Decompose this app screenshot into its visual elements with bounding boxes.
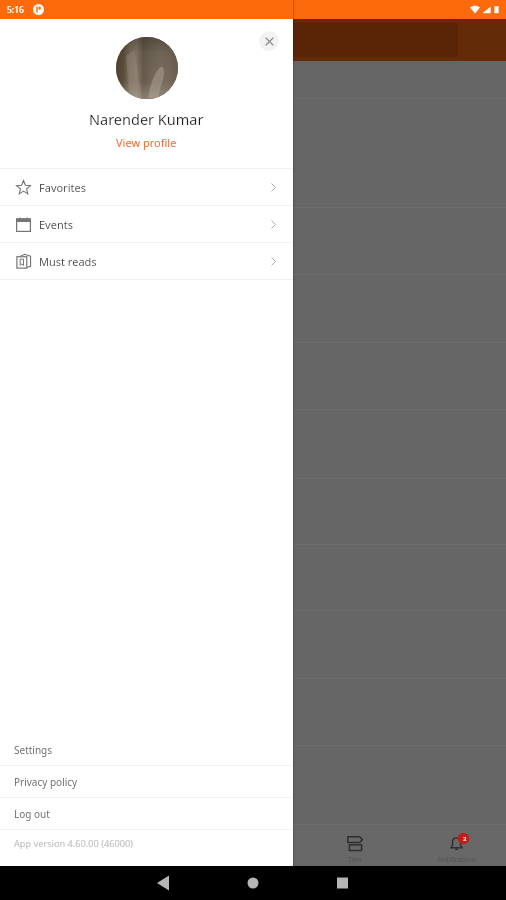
staticText: Narender Kumar	[89, 109, 204, 129]
button[interactable]: Search	[10, 22, 458, 57]
staticText: 5:16	[7, 4, 24, 16]
staticText: Settings	[14, 743, 53, 757]
button[interactable]: Favorites	[0, 169, 293, 205]
staticText: 2	[463, 835, 467, 843]
staticText: Tiles	[348, 855, 362, 864]
button[interactable]: Tiles	[310, 834, 400, 864]
staticText: Log out	[14, 807, 50, 821]
button[interactable]: Settings	[0, 734, 293, 765]
staticText: Events	[39, 217, 73, 232]
button[interactable]: 2	[412, 834, 502, 864]
staticText: Must reads	[39, 254, 97, 269]
button[interactable]: Events	[0, 206, 293, 242]
staticText: View profile	[116, 135, 177, 150]
button[interactable]: Log out	[0, 798, 293, 829]
button[interactable]: Close drawer	[259, 31, 279, 51]
button[interactable]: View profile	[110, 134, 183, 151]
staticText: Notifications	[438, 855, 477, 864]
staticText: App version 4.60.00 (46000)	[14, 837, 133, 850]
staticText: Privacy policy	[14, 775, 78, 789]
button[interactable]: Must reads	[0, 243, 293, 279]
button[interactable]: Privacy policy	[0, 766, 293, 797]
staticText: Favorites	[39, 180, 86, 195]
